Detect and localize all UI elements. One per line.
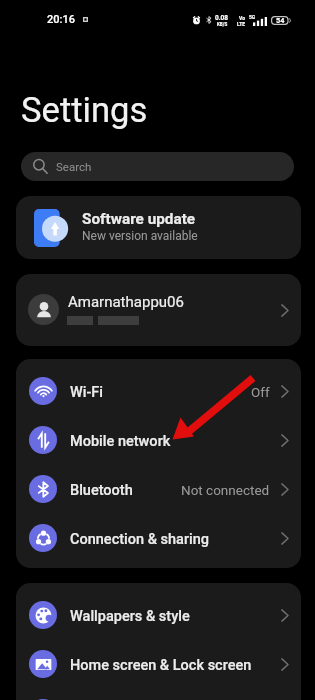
- staticText: LTE: [237, 21, 246, 27]
- button[interactable]: Mobile network: [16, 415, 301, 464]
- staticText: 54: [276, 16, 285, 25]
- staticText: Home screen & Lock screen: [70, 657, 252, 674]
- staticText: Software update: [82, 210, 196, 228]
- button[interactable]: Connection & sharing: [16, 513, 301, 562]
- staticText: New version available: [82, 229, 198, 243]
- staticText: 20:16: [47, 13, 75, 26]
- staticText: Mobile network: [70, 433, 171, 450]
- staticText: Search: [56, 160, 92, 173]
- button[interactable]: Amarnathappu06: [16, 274, 301, 346]
- staticText: 5G: [249, 14, 256, 20]
- staticText: Not connected: [181, 482, 270, 498]
- button[interactable]: Wallpapers & style: [16, 590, 301, 639]
- button[interactable]: Software update: [16, 196, 301, 259]
- staticText: Connection & sharing: [70, 531, 210, 548]
- staticText: 0.08: [215, 14, 229, 22]
- other: Account details: [281, 304, 289, 317]
- staticText: Off: [251, 384, 270, 400]
- button[interactable]: Wi-Fi: [16, 366, 301, 415]
- staticText: Vo: [239, 15, 245, 21]
- button[interactable]: Search: [21, 152, 294, 181]
- button[interactable]: Display & brightness: [16, 688, 301, 700]
- button[interactable]: Bluetooth: [16, 464, 301, 513]
- staticText: KB/S: [217, 22, 228, 27]
- staticText: Wi-Fi: [70, 384, 103, 401]
- staticText: Settings: [21, 90, 148, 131]
- staticText: Wallpapers & style: [70, 608, 190, 625]
- staticText: Bluetooth: [70, 482, 133, 499]
- staticText: Amarnathappu06: [68, 293, 184, 311]
- button[interactable]: Home screen & Lock screen: [16, 639, 301, 688]
